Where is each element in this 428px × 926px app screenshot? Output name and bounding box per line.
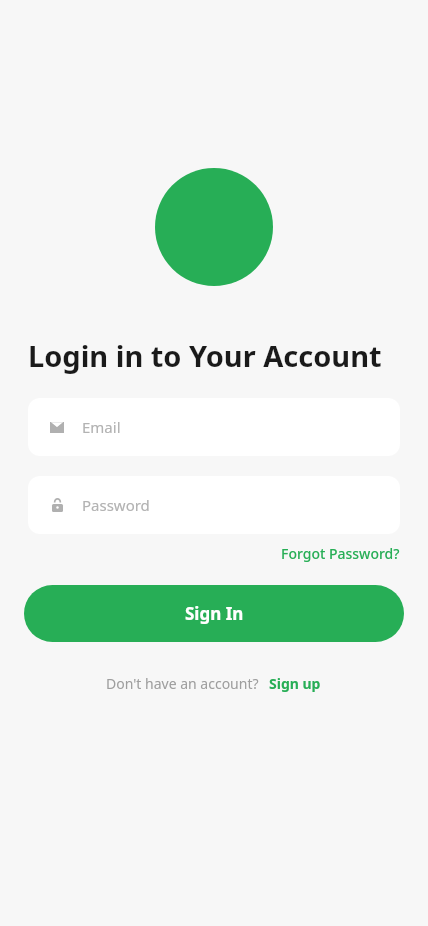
- button[interactable]: Email: [28, 398, 400, 456]
- staticText: Email: [82, 417, 121, 437]
- staticText: Don't have an account?: [106, 674, 259, 693]
- staticText: Password: [82, 495, 150, 515]
- button[interactable]: Forgot Password?: [281, 540, 400, 567]
- staticText: Login in to Your Account: [28, 336, 382, 375]
- staticText: Sign up: [269, 674, 321, 693]
- staticText: Forgot Password?: [281, 544, 400, 563]
- other: Password: [52, 498, 63, 512]
- button[interactable]: Sign In: [24, 585, 404, 642]
- button[interactable]: Password: [28, 476, 400, 534]
- staticText: Sign In: [185, 602, 244, 625]
- other: Email: [50, 422, 64, 433]
- button[interactable]: Sign up: [267, 670, 323, 697]
